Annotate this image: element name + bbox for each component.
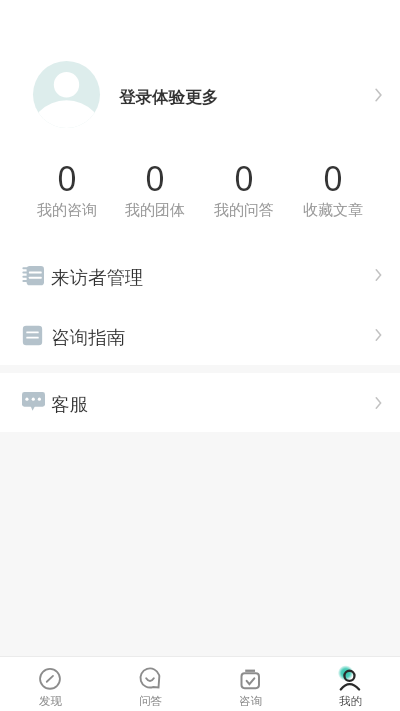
staticText: 登录体验更多 (119, 87, 218, 108)
staticText: 收藏文章 (303, 201, 363, 220)
staticText: 发现 (39, 694, 62, 708)
button[interactable]: 咨询指南 (0, 305, 400, 365)
button[interactable]: 0 (23, 155, 111, 220)
button[interactable]: Q and A (100, 657, 200, 708)
staticText: 0 (234, 155, 254, 201)
button[interactable]: 登录体验更多 (0, 0, 400, 152)
staticText: 我的团体 (125, 201, 185, 220)
staticText: 问答 (139, 694, 162, 708)
button[interactable]: 客服 (0, 373, 400, 432)
button[interactable]: 0 (288, 155, 377, 220)
staticText: 我的咨询 (37, 201, 97, 220)
button[interactable]: 0 (111, 155, 199, 220)
staticText: 客服 (51, 393, 88, 416)
staticText: 0 (145, 155, 165, 201)
staticText: 咨询指南 (51, 326, 125, 349)
staticText: 0 (57, 155, 77, 201)
staticText: 来访者管理 (51, 266, 144, 289)
staticText: 咨询 (239, 694, 262, 708)
staticText: 0 (323, 155, 343, 201)
button[interactable]: Consult (200, 657, 300, 708)
button[interactable]: Mine (300, 657, 400, 708)
button[interactable]: 0 (199, 155, 288, 220)
staticText: 我的 (339, 694, 362, 708)
button[interactable]: Discover (0, 657, 100, 708)
button[interactable]: 来访者管理 (0, 245, 400, 305)
staticText: 我的问答 (214, 201, 274, 220)
